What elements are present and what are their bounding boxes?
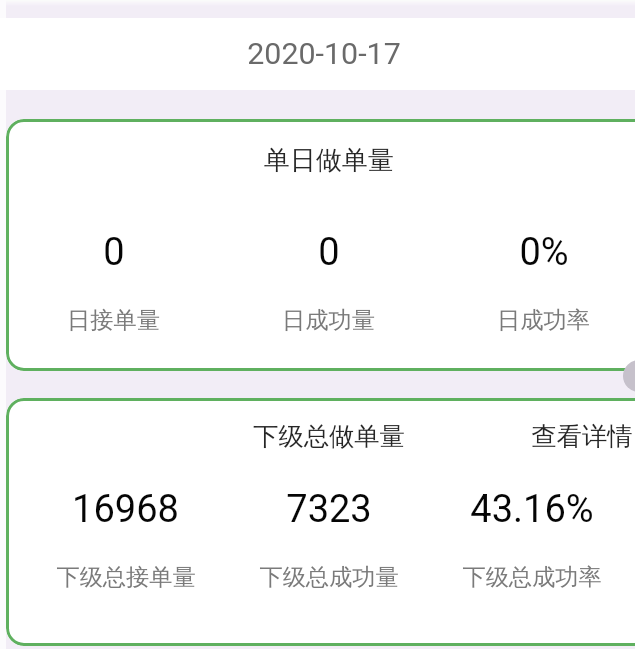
button[interactable]: 单日做单量 (6, 119, 635, 371)
staticText: 16968 (72, 487, 179, 532)
staticText: 单日做单量 (264, 144, 394, 177)
staticText: 下级总接单量 (56, 563, 196, 592)
staticText: 日接单量 (67, 306, 160, 335)
staticText: 查看详情 (531, 421, 633, 453)
staticText: 2020-10-17 (247, 36, 401, 72)
button[interactable]: Customer service (623, 360, 635, 392)
staticText: 0 (103, 230, 125, 275)
button[interactable]: 2020-10-17 (0, 18, 635, 90)
staticText: 7323 (286, 487, 372, 532)
staticText: 下级总成功量 (259, 563, 399, 592)
staticText: 日成功量 (282, 306, 375, 335)
staticText: 0 (318, 230, 340, 275)
staticText: 0% (519, 230, 569, 275)
staticText: 下级总成功率 (462, 563, 602, 592)
staticText: 下级总做单量 (253, 421, 405, 453)
staticText: 43.16% (470, 487, 594, 532)
button[interactable]: 下级总做单量 (6, 398, 635, 646)
staticText: 日成功率 (497, 306, 590, 335)
button[interactable]: 查看详情 (531, 421, 633, 453)
